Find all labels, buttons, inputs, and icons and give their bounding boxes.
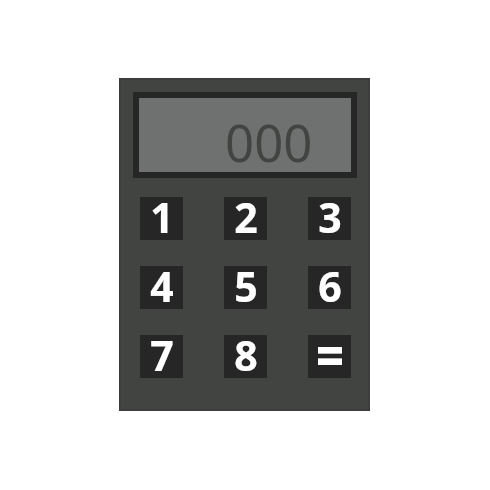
staticText: 000 (225, 107, 313, 176)
button[interactable]: 2 (224, 197, 267, 240)
staticText: 2 (234, 189, 258, 245)
button[interactable]: Equals (308, 335, 351, 378)
button[interactable]: 4 (140, 266, 183, 309)
button[interactable]: 1 (140, 197, 183, 240)
staticText: 1 (150, 189, 174, 245)
staticText: 6 (318, 258, 342, 314)
other: Display showing 000 (133, 92, 357, 178)
button[interactable]: 5 (224, 266, 267, 309)
button[interactable]: 6 (308, 266, 351, 309)
staticText: 5 (234, 258, 258, 314)
button[interactable]: 8 (224, 335, 267, 378)
button[interactable]: 7 (140, 335, 183, 378)
staticText: 4 (150, 258, 174, 314)
staticText: 7 (150, 327, 174, 383)
staticText: 3 (318, 189, 342, 245)
button[interactable]: 3 (308, 197, 351, 240)
staticText: 8 (234, 327, 258, 383)
